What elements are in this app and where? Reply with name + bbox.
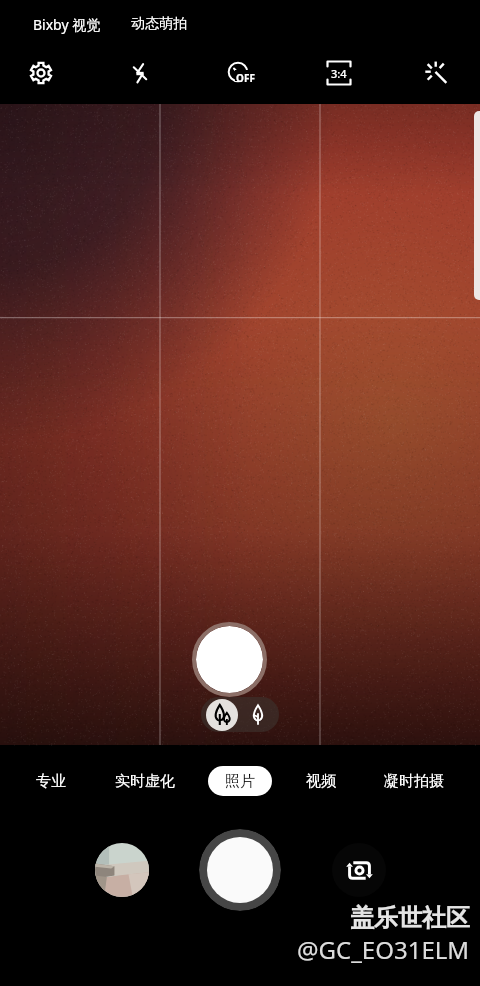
button[interactable]: 视频 bbox=[297, 766, 345, 796]
button[interactable]: 照片 bbox=[208, 766, 272, 796]
button[interactable]: 凝时拍摄 bbox=[374, 766, 454, 796]
button[interactable]: Timer off bbox=[218, 53, 258, 93]
button[interactable]: 专业 bbox=[27, 766, 75, 796]
button[interactable]: Switch camera bbox=[332, 843, 386, 897]
staticText: 3:4 bbox=[331, 66, 347, 81]
button[interactable]: Settings bbox=[21, 53, 61, 93]
button[interactable]: Aspect ratio 3 to 4 bbox=[319, 53, 359, 93]
staticText: 视频 bbox=[306, 772, 336, 791]
button[interactable]: Standard bbox=[242, 699, 274, 731]
staticText: 凝时拍摄 bbox=[384, 772, 444, 791]
staticText: @GC_EO31ELM bbox=[297, 933, 470, 966]
button[interactable]: Effects bbox=[417, 53, 457, 93]
button[interactable]: Wide angle bbox=[206, 699, 238, 731]
button[interactable]: Shutter bbox=[199, 829, 281, 911]
button[interactable]: 实时虚化 bbox=[105, 766, 185, 796]
staticText: 盖乐世社区 bbox=[350, 903, 470, 933]
staticText: 实时虚化 bbox=[115, 772, 175, 791]
button[interactable]: 动态萌拍 bbox=[124, 10, 194, 38]
button[interactable]: Gallery bbox=[95, 843, 149, 897]
button[interactable]: Flash off bbox=[120, 53, 160, 93]
staticText: 动态萌拍 bbox=[131, 15, 187, 33]
staticText: 专业 bbox=[36, 772, 66, 791]
staticText: 照片 bbox=[225, 772, 255, 791]
button[interactable]: Bixby 视觉 bbox=[26, 10, 108, 39]
staticText: OFF bbox=[236, 71, 255, 85]
staticText: Bixby 视觉 bbox=[33, 15, 101, 34]
